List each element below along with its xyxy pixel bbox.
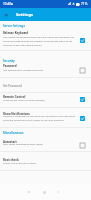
staticText: Security bbox=[3, 59, 77, 63]
staticText: Start server immediately after reboot bbox=[3, 143, 77, 146]
button[interactable] bbox=[0, 109, 91, 127]
button[interactable]: Checked bbox=[77, 94, 87, 104]
staticText: Miscellaneous bbox=[3, 131, 77, 135]
staticText: Release Keyboard bbox=[3, 31, 77, 35]
button[interactable]: Navigate up bbox=[0, 9, 12, 21]
button[interactable]: Unchecked bbox=[77, 65, 87, 75]
button[interactable]: Checked bbox=[77, 35, 87, 45]
staticText: Settings bbox=[16, 12, 34, 18]
button[interactable] bbox=[0, 64, 91, 77]
staticText: Allow remote control to share device(s) bbox=[3, 99, 77, 102]
staticText: Remote Control bbox=[3, 95, 77, 99]
staticText: 71% bbox=[81, 2, 88, 6]
button[interactable]: Checked bbox=[77, 113, 87, 123]
staticText: Checks if your phone is rooted bbox=[3, 162, 77, 165]
button[interactable] bbox=[0, 155, 91, 170]
staticText: Use a password for establishing conn bbox=[3, 69, 77, 72]
staticText: Autostart bbox=[3, 140, 77, 144]
button[interactable]: Unchecked bbox=[77, 140, 87, 150]
staticText: Set Password bbox=[3, 84, 77, 88]
staticText: 10:48 bbox=[3, 2, 12, 6]
button[interactable] bbox=[0, 137, 91, 151]
staticText: Root check bbox=[3, 158, 77, 162]
button[interactable] bbox=[0, 79, 91, 92]
staticText: Server Settings bbox=[3, 24, 77, 28]
button[interactable]: Back bbox=[25, 188, 33, 196]
button[interactable] bbox=[0, 93, 91, 107]
button[interactable] bbox=[0, 29, 91, 50]
staticText: Will release the keyboard when no more c… bbox=[3, 36, 77, 46]
staticText: Show Notifications bbox=[3, 112, 77, 116]
button[interactable]: Recent apps bbox=[54, 188, 62, 196]
button[interactable]: Home bbox=[40, 188, 48, 196]
staticText: Displays a notification in the status ba… bbox=[3, 115, 77, 121]
staticText: Password bbox=[3, 64, 77, 68]
